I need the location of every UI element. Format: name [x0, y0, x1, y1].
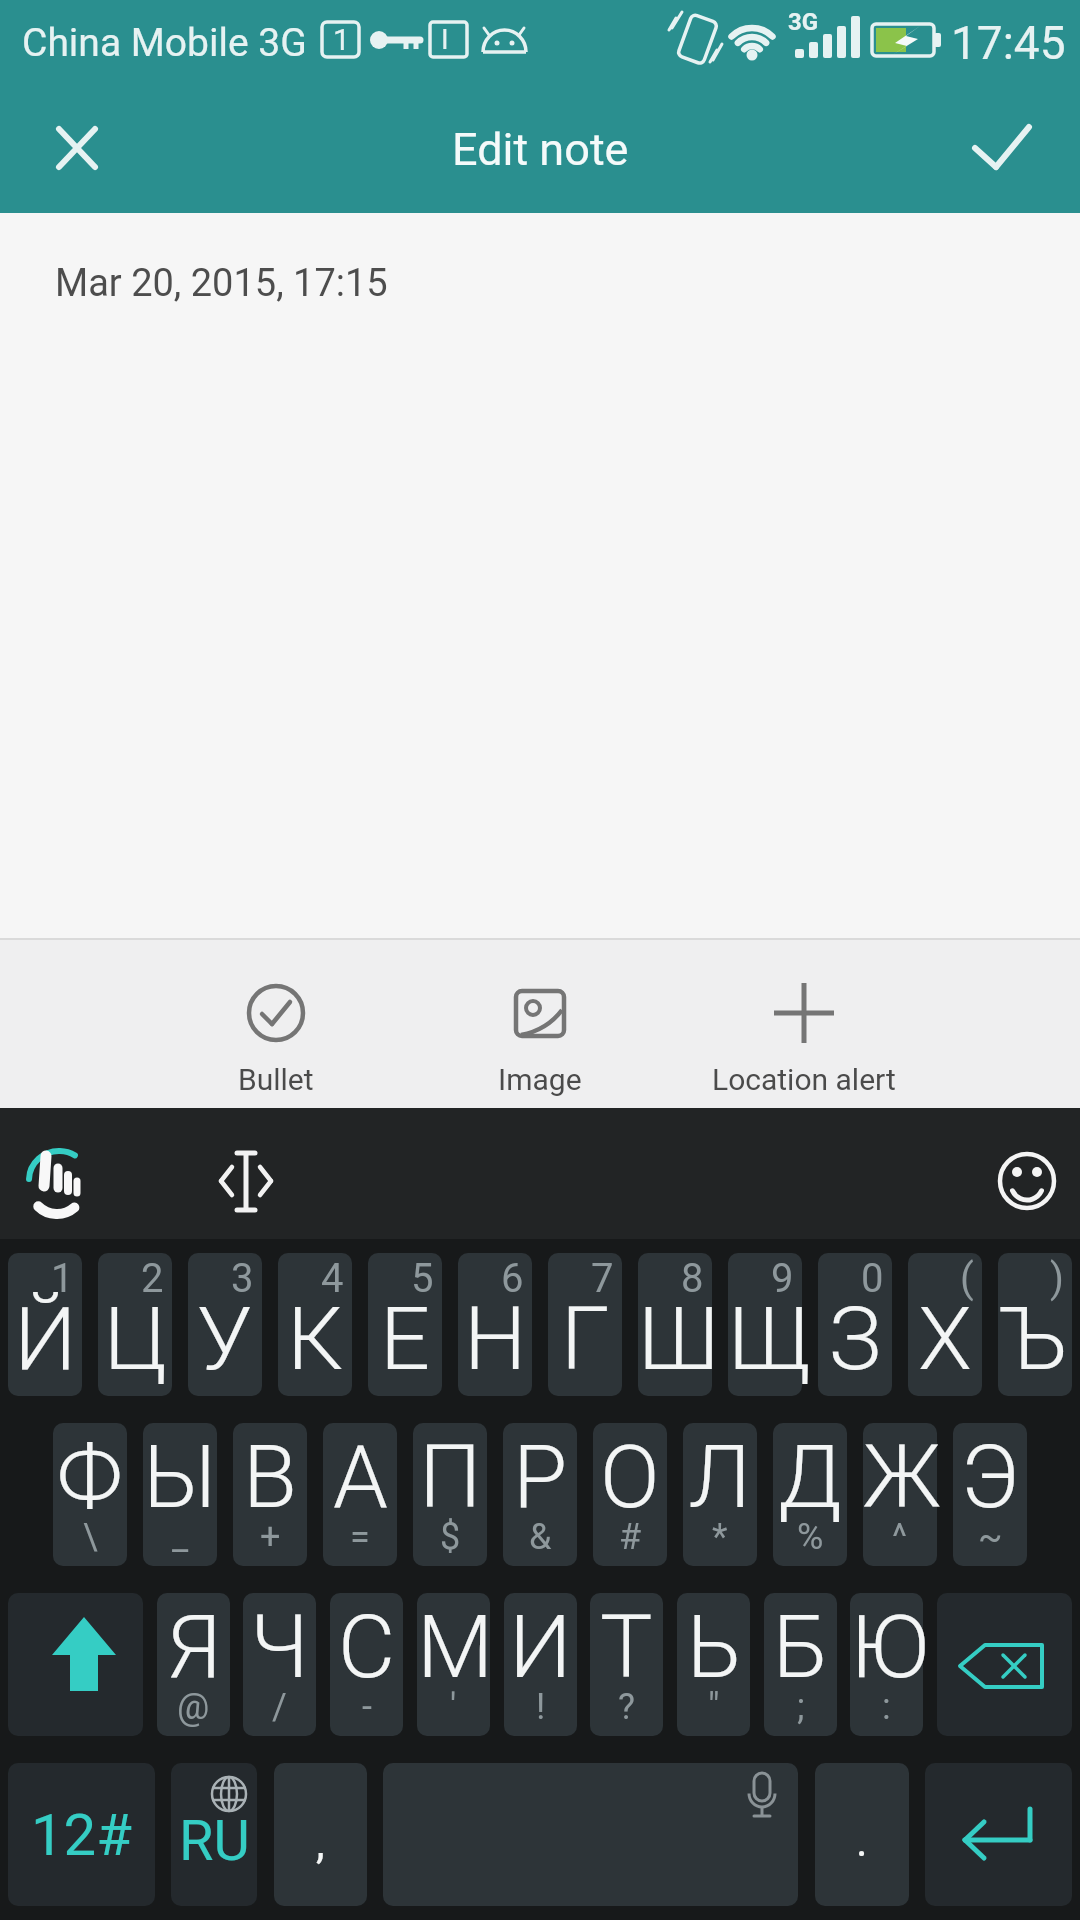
- staticText: И: [509, 1595, 572, 1698]
- button[interactable]: Р: [503, 1423, 577, 1566]
- staticText: П: [419, 1425, 482, 1528]
- staticText: Б: [773, 1595, 829, 1698]
- button[interactable]: (: [908, 1253, 982, 1396]
- staticText: Г: [561, 1287, 610, 1390]
- staticText: Х: [918, 1287, 972, 1390]
- staticText: ): [1050, 1255, 1064, 1302]
- staticText: \: [83, 1516, 98, 1558]
- button[interactable]: Ч: [243, 1593, 316, 1736]
- staticText: -: [362, 1686, 372, 1728]
- button[interactable]: [985, 1138, 1070, 1223]
- button[interactable]: О: [593, 1423, 667, 1566]
- button[interactable]: [970, 85, 1080, 213]
- staticText: В: [243, 1425, 297, 1528]
- button[interactable]: 3: [188, 1253, 262, 1396]
- button[interactable]: Б: [764, 1593, 837, 1736]
- staticText: Edit note: [452, 123, 629, 176]
- staticText: !: [536, 1686, 546, 1728]
- button[interactable]: RU: [171, 1763, 257, 1906]
- button[interactable]: 1: [8, 1253, 82, 1396]
- staticText: $: [440, 1516, 461, 1558]
- staticText: 7: [591, 1255, 614, 1302]
- button[interactable]: 12#: [8, 1763, 155, 1906]
- staticText: К: [287, 1287, 344, 1390]
- staticText: Ю: [850, 1595, 923, 1698]
- button[interactable]: [383, 1763, 798, 1906]
- button[interactable]: Л: [683, 1423, 757, 1566]
- button[interactable]: П: [413, 1423, 487, 1566]
- button[interactable]: [200, 1138, 292, 1223]
- staticText: У: [197, 1287, 253, 1390]
- staticText: Ж: [863, 1425, 937, 1528]
- button[interactable]: [18, 1138, 98, 1223]
- button[interactable]: ): [998, 1253, 1072, 1396]
- button[interactable]: 6: [458, 1253, 532, 1396]
- button[interactable]: [0, 85, 100, 213]
- button[interactable]: А: [323, 1423, 397, 1566]
- staticText: 8: [681, 1255, 704, 1302]
- staticText: 9: [771, 1255, 794, 1302]
- button[interactable]: ,: [274, 1763, 367, 1906]
- staticText: 17:45: [951, 16, 1066, 70]
- button[interactable]: 0: [818, 1253, 892, 1396]
- staticText: (: [960, 1255, 974, 1302]
- button[interactable]: С: [330, 1593, 403, 1736]
- staticText: С: [338, 1595, 396, 1698]
- staticText: Щ: [728, 1287, 802, 1390]
- button[interactable]: 4: [278, 1253, 352, 1396]
- staticText: ;: [797, 1686, 805, 1728]
- staticText: ~: [978, 1516, 1003, 1558]
- staticText: Й: [14, 1287, 77, 1390]
- staticText: 0: [861, 1255, 884, 1302]
- button[interactable]: И: [504, 1593, 577, 1736]
- button[interactable]: Т: [590, 1593, 663, 1736]
- button[interactable]: Image: [408, 940, 672, 1108]
- button[interactable]: [937, 1593, 1072, 1736]
- staticText: Ы: [143, 1425, 217, 1528]
- staticText: Location alert: [712, 1062, 896, 1097]
- button[interactable]: 9: [728, 1253, 802, 1396]
- button[interactable]: [925, 1763, 1072, 1906]
- button[interactable]: 7: [548, 1253, 622, 1396]
- button[interactable]: Ф: [53, 1423, 127, 1566]
- button[interactable]: 5: [368, 1253, 442, 1396]
- staticText: ?: [618, 1686, 636, 1728]
- staticText: Ь: [687, 1595, 741, 1698]
- staticText: /: [272, 1686, 287, 1728]
- staticText: 3G: [788, 8, 819, 36]
- button[interactable]: Ю: [850, 1593, 923, 1736]
- staticText: :: [882, 1686, 891, 1728]
- staticText: ": [708, 1686, 720, 1728]
- staticText: Р: [513, 1425, 568, 1528]
- button[interactable]: .: [815, 1763, 909, 1906]
- staticText: &: [529, 1516, 552, 1558]
- staticText: 2: [141, 1255, 164, 1302]
- button[interactable]: Bullet: [144, 940, 408, 1108]
- button[interactable]: Я: [157, 1593, 230, 1736]
- staticText: О: [600, 1425, 660, 1528]
- button[interactable]: В: [233, 1423, 307, 1566]
- staticText: 3: [231, 1255, 254, 1302]
- staticText: Ъ: [1001, 1287, 1070, 1390]
- button[interactable]: Д: [773, 1423, 847, 1566]
- button[interactable]: Location alert: [672, 940, 936, 1108]
- staticText: 6: [501, 1255, 524, 1302]
- staticText: 4: [321, 1255, 344, 1302]
- staticText: I: [441, 23, 449, 56]
- staticText: Л: [689, 1425, 751, 1528]
- staticText: Е: [380, 1287, 431, 1390]
- staticText: .: [856, 1815, 868, 1867]
- button[interactable]: Ы: [143, 1423, 217, 1566]
- button[interactable]: Э: [953, 1423, 1027, 1566]
- button[interactable]: Ж: [863, 1423, 937, 1566]
- button[interactable]: [8, 1593, 143, 1736]
- button[interactable]: 2: [98, 1253, 172, 1396]
- staticText: @: [177, 1686, 210, 1728]
- staticText: =: [350, 1516, 370, 1558]
- button[interactable]: М: [417, 1593, 490, 1736]
- staticText: Я: [167, 1595, 221, 1698]
- staticText: 5: [411, 1255, 434, 1302]
- staticText: ': [450, 1686, 457, 1728]
- button[interactable]: 8: [638, 1253, 712, 1396]
- button[interactable]: Ь: [677, 1593, 750, 1736]
